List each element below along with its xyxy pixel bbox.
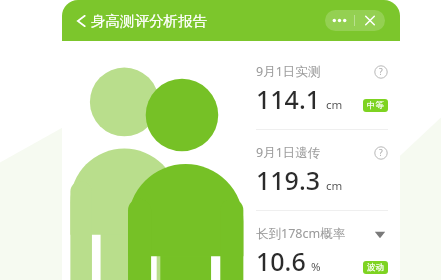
staticText: 9月1日遗传	[256, 144, 321, 161]
staticText: cm	[326, 97, 343, 113]
button[interactable]: Expand	[372, 226, 388, 242]
button[interactable]: 波动	[363, 261, 388, 274]
button[interactable]: Back	[67, 8, 93, 34]
staticText: 10.6	[256, 244, 306, 278]
button[interactable]: Help	[374, 65, 388, 79]
staticText: 9月1日实测	[256, 63, 321, 80]
staticText: 119.3	[256, 163, 321, 197]
button[interactable]: More options	[325, 10, 354, 31]
button[interactable]: Help	[374, 146, 388, 160]
staticText: ?	[379, 147, 383, 159]
button[interactable]: 长到178cm概率	[256, 225, 388, 278]
staticText: 114.1	[256, 82, 321, 116]
staticText: 身高测评分析报告	[91, 12, 207, 30]
button[interactable]: 9月1日实测	[256, 63, 388, 116]
staticText: 长到178cm概率	[256, 225, 346, 242]
button[interactable]: 9月1日遗传	[256, 144, 388, 197]
button[interactable]: 中等	[363, 99, 388, 112]
staticText: %	[311, 259, 321, 275]
staticText: 中等	[367, 100, 384, 111]
button[interactable]: Close	[355, 10, 385, 31]
staticText: 波动	[367, 262, 384, 273]
staticText: ?	[379, 66, 383, 78]
staticText: cm	[326, 178, 343, 194]
